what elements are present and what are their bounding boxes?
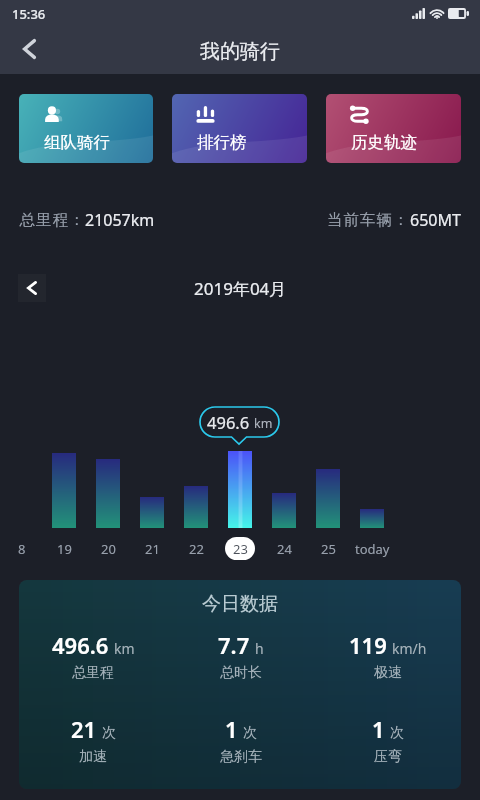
staticText: 496.6 bbox=[207, 411, 250, 433]
staticText: 21057km bbox=[85, 209, 155, 231]
staticText: 总里程： bbox=[19, 210, 85, 230]
staticText: 650MT bbox=[410, 209, 461, 231]
button[interactable]: Previous month bbox=[18, 274, 46, 302]
button[interactable]: 组队骑行 bbox=[19, 94, 153, 163]
staticText: 25 bbox=[321, 540, 336, 558]
staticText: 总里程 bbox=[72, 664, 114, 682]
staticText: 次 bbox=[390, 724, 404, 742]
staticText: 组队骑行 bbox=[44, 132, 110, 153]
staticText: km bbox=[254, 415, 273, 432]
button[interactable]: 23 bbox=[225, 537, 255, 560]
staticText: 19 bbox=[57, 540, 72, 558]
staticText: 23 bbox=[233, 540, 248, 558]
staticText: 极速 bbox=[374, 664, 402, 682]
staticText: 加速 bbox=[79, 748, 107, 766]
staticText: 排行榜 bbox=[197, 132, 247, 153]
button[interactable]: Back bbox=[0, 26, 58, 72]
button[interactable]: 历史轨迹 bbox=[326, 94, 461, 163]
staticText: 今日数据 bbox=[19, 592, 461, 616]
staticText: 我的骑行 bbox=[200, 39, 280, 64]
staticText: 24 bbox=[277, 540, 292, 558]
staticText: 8 bbox=[18, 540, 26, 558]
staticText: 7.7 bbox=[218, 630, 250, 660]
staticText: 21 bbox=[145, 540, 160, 558]
staticText: 次 bbox=[243, 724, 257, 742]
staticText: 1 bbox=[372, 714, 385, 744]
staticText: 20 bbox=[101, 540, 116, 558]
staticText: 21 bbox=[71, 714, 97, 744]
staticText: 496.6 bbox=[52, 630, 109, 660]
staticText: 119 bbox=[349, 630, 387, 660]
staticText: km bbox=[114, 639, 135, 658]
staticText: 2019年04月 bbox=[194, 277, 287, 300]
staticText: 急刹车 bbox=[220, 748, 262, 766]
staticText: 历史轨迹 bbox=[351, 132, 417, 153]
staticText: h bbox=[255, 639, 264, 658]
staticText: 15:36 bbox=[12, 5, 46, 23]
staticText: 总时长 bbox=[220, 664, 262, 682]
button[interactable]: 排行榜 bbox=[172, 94, 307, 163]
staticText: km/h bbox=[392, 639, 427, 658]
staticText: 当前车辆： bbox=[327, 210, 410, 230]
staticText: today bbox=[355, 540, 390, 558]
staticText: 压弯 bbox=[374, 748, 402, 766]
staticText: 1 bbox=[225, 714, 238, 744]
staticText: 22 bbox=[189, 540, 204, 558]
staticText: 次 bbox=[102, 724, 116, 742]
